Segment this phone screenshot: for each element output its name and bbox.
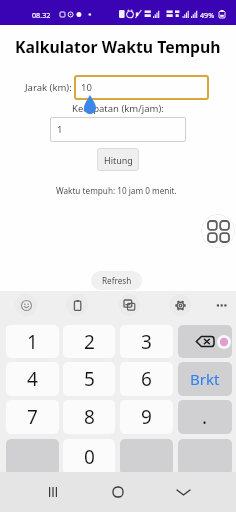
staticText: 4 <box>27 366 38 392</box>
staticText: Jarak (km): <box>25 81 72 94</box>
button[interactable]: 7 <box>6 400 59 434</box>
button[interactable]: 5 <box>63 362 115 396</box>
button[interactable]: Period <box>178 400 232 434</box>
button[interactable]: Hitung <box>97 148 139 171</box>
button[interactable]: Symbols <box>6 439 59 475</box>
button[interactable]: 1 <box>50 117 186 142</box>
staticText: 08.32 <box>32 10 51 20</box>
staticText: 0 <box>84 444 95 470</box>
button[interactable]: Space <box>120 439 173 475</box>
button[interactable]: 1 <box>6 325 59 358</box>
button[interactable]: Enter <box>178 439 232 475</box>
staticText: 6 <box>141 366 152 392</box>
staticText: Waktu tempuh: 10 jam 0 menit. <box>56 185 177 196</box>
staticText: Brkt <box>190 369 220 389</box>
staticText: 9 <box>141 404 152 430</box>
button[interactable]: Backspace <box>178 325 232 358</box>
staticText: 3 <box>141 329 152 355</box>
staticText: 1 <box>57 123 63 136</box>
button[interactable]: 9 <box>120 400 173 434</box>
button[interactable]: 6 <box>120 362 173 396</box>
button[interactable]: 2 <box>63 325 115 358</box>
staticText: 7 <box>27 404 38 430</box>
button[interactable]: Recents <box>36 475 70 509</box>
staticText: Refresh <box>102 275 132 286</box>
staticText: Kalkulator Waktu Tempuh <box>15 36 221 58</box>
staticText: 8 <box>84 404 95 430</box>
button[interactable]: Clipboard <box>66 294 88 316</box>
staticText: 5 <box>84 366 95 392</box>
staticText: 1 <box>27 329 38 355</box>
staticText: Kecepatan (km/jam): <box>72 102 164 115</box>
button[interactable]: 10 <box>74 75 209 100</box>
button[interactable]: 3 <box>120 325 173 358</box>
button[interactable]: Home <box>101 475 135 509</box>
button[interactable]: Apps <box>201 214 235 248</box>
staticText: . <box>202 404 208 430</box>
button[interactable]: 4 <box>6 362 59 396</box>
button[interactable]: Translate <box>118 294 140 316</box>
button[interactable]: Emoji <box>15 294 37 316</box>
button[interactable]: Settings <box>169 294 191 316</box>
button[interactable]: Back <box>166 475 200 509</box>
staticText: 2 <box>84 329 95 355</box>
staticText: 10 <box>81 81 92 94</box>
button[interactable]: 0 <box>63 439 115 475</box>
staticText: 49% <box>200 10 215 20</box>
button[interactable]: More options <box>210 294 232 316</box>
button[interactable]: Brackets <box>178 362 232 396</box>
staticText: Hitung <box>104 154 133 166</box>
button[interactable]: 8 <box>63 400 115 434</box>
button[interactable]: Refresh <box>91 271 142 290</box>
